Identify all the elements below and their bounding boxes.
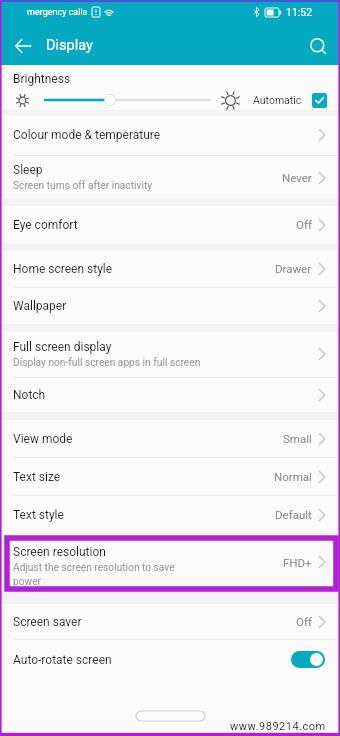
staticText: Text size [13, 470, 61, 484]
button[interactable]: Notch [0, 378, 340, 412]
staticText: Adjust the screen resolution to save pow… [13, 562, 195, 588]
staticText: mergency calls [27, 7, 88, 18]
staticText: Off [296, 615, 312, 628]
staticText: Default [275, 508, 312, 521]
staticText: FHD+ [283, 556, 312, 569]
staticText: Full screen display [13, 340, 112, 354]
staticText: Auto-rotate screen [13, 653, 291, 667]
button[interactable]: Sleep [0, 156, 340, 199]
button[interactable]: Auto-rotate screen [0, 640, 340, 679]
staticText: Sleep [13, 163, 43, 177]
button[interactable]: Screen resolution [0, 534, 340, 590]
staticText: Eye comfort [13, 218, 78, 232]
staticText: 11:52 [286, 6, 313, 18]
button[interactable]: Search [296, 24, 340, 65]
button[interactable]: Back [0, 24, 45, 65]
button[interactable]: Screen saver [0, 604, 340, 639]
staticText: Drawer [275, 262, 312, 275]
button[interactable]: Auto-rotate screen [291, 651, 325, 668]
staticText: Screen resolution [13, 545, 106, 559]
button[interactable]: Eye comfort [0, 206, 340, 243]
staticText: Brightness [13, 72, 71, 86]
staticText: Normal [274, 470, 312, 483]
staticText: www.989214.com [230, 720, 326, 733]
staticText: Text style [13, 508, 64, 522]
staticText: Display [46, 37, 93, 54]
button[interactable]: Text size [0, 458, 340, 495]
staticText: Home screen style [13, 262, 113, 276]
button[interactable]: Wallpaper [0, 288, 340, 324]
staticText: Wallpaper [13, 299, 67, 313]
staticText: Small [283, 432, 312, 445]
staticText: Colour mode & temperature [13, 128, 161, 142]
button[interactable]: Home screen style [0, 250, 340, 287]
button[interactable]: Text style [0, 496, 340, 533]
button[interactable]: View mode [0, 420, 340, 457]
staticText: Off [296, 218, 312, 231]
staticText: Screen turns off after inactivity [13, 180, 153, 192]
staticText: Display non-full screen apps in full scr… [13, 357, 201, 369]
staticText: View mode [13, 432, 73, 446]
staticText: Automatic [253, 94, 302, 106]
staticText: Notch [13, 388, 46, 402]
staticText: Never [282, 171, 312, 184]
button[interactable]: Full screen display [0, 331, 340, 377]
staticText: Screen saver [13, 615, 82, 629]
button[interactable]: Automatic brightness [312, 93, 327, 108]
button[interactable]: Colour mode & temperature [0, 115, 340, 155]
